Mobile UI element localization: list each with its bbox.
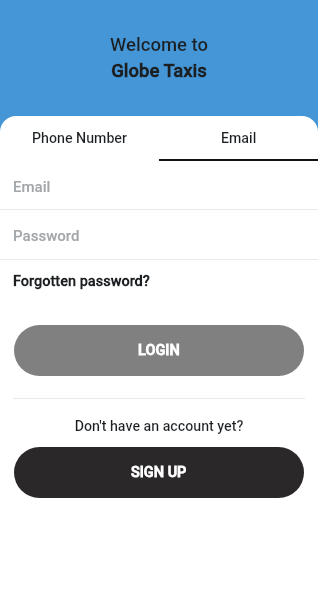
button[interactable]: Email <box>159 116 318 162</box>
staticText: LOGIN <box>138 342 180 359</box>
staticText: Password <box>13 227 80 245</box>
staticText: SIGN UP <box>131 464 187 481</box>
staticText: Globe Taxis <box>111 60 207 82</box>
button[interactable]: SIGN UP <box>14 447 304 498</box>
staticText: Phone Number <box>32 130 127 147</box>
staticText: Email <box>221 130 257 147</box>
button[interactable]: LOGIN <box>14 325 304 376</box>
staticText: Email <box>13 178 51 196</box>
button[interactable]: Forgotten password? <box>13 273 150 290</box>
staticText: Welcome to <box>110 34 208 56</box>
button[interactable]: Phone Number <box>0 116 159 162</box>
staticText: Don't have an account yet? <box>0 418 318 435</box>
